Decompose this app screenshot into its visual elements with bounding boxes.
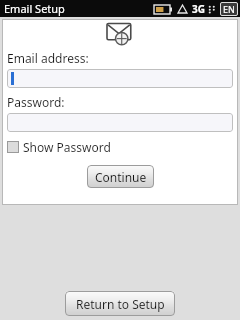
- staticText: Email address:: [7, 50, 89, 66]
- staticText: Password:: [7, 94, 65, 110]
- staticText: Continue: [95, 169, 147, 185]
- staticText: 3G: [192, 2, 205, 16]
- staticText: Return to Setup: [76, 296, 165, 312]
- staticText: Email Setup: [4, 1, 65, 16]
- button[interactable]: Return to Setup: [65, 291, 175, 316]
- button[interactable]: [7, 113, 233, 132]
- button[interactable]: Continue: [87, 165, 154, 188]
- button[interactable]: [7, 69, 233, 88]
- staticText: EN: [223, 3, 235, 15]
- button[interactable]: Input language EN: [220, 2, 238, 16]
- button[interactable]: Show Password: [7, 139, 111, 155]
- staticText: Show Password: [23, 139, 111, 155]
